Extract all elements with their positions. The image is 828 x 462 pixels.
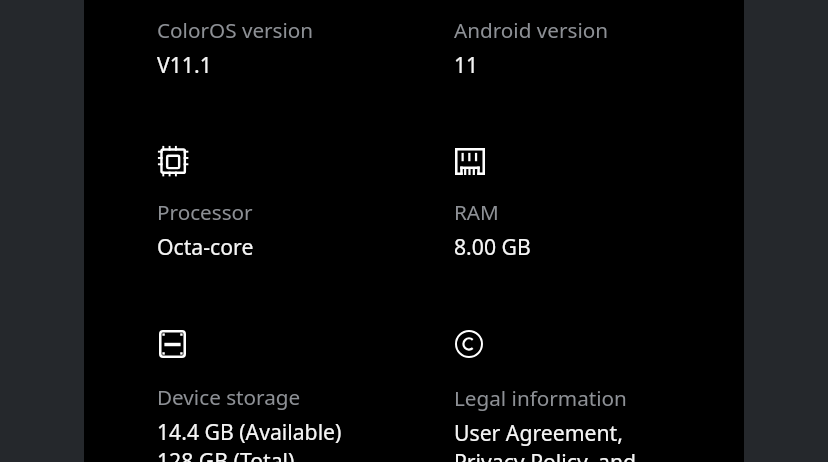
staticText: ColorOS version <box>157 16 314 44</box>
staticText: RAM <box>454 198 499 226</box>
staticText: Device storage <box>157 383 301 411</box>
button[interactable]: Android version <box>454 16 734 100</box>
staticText: Legal information <box>454 384 627 412</box>
staticText: 8.00 GB <box>454 232 531 261</box>
staticText: Processor <box>157 198 253 226</box>
button[interactable]: Device storage <box>157 330 437 462</box>
staticText: V11.1 <box>157 50 212 79</box>
staticText: Android version <box>454 16 609 44</box>
button[interactable]: Processor <box>157 146 437 282</box>
staticText: 11 <box>454 50 479 79</box>
staticText: 14.4 GB (Available) 128 GB (Total) <box>157 417 342 462</box>
button[interactable]: Legal information <box>454 330 734 462</box>
button[interactable]: RAM <box>454 148 734 282</box>
staticText: User Agreement, Privacy Policy, and <box>454 418 637 462</box>
button[interactable]: ColorOS version <box>157 16 437 100</box>
staticText: Octa-core <box>157 232 254 261</box>
